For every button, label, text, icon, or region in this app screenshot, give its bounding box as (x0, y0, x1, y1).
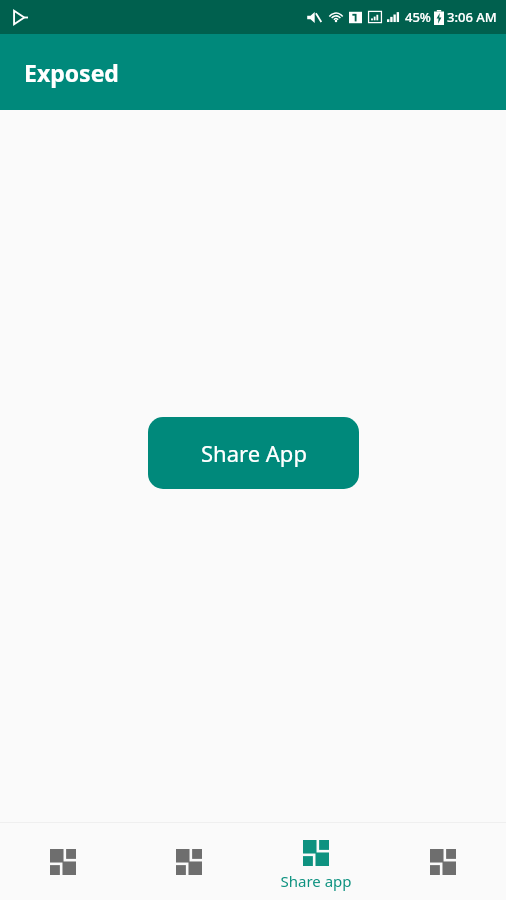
staticText: 45% (405, 8, 431, 26)
button[interactable]: Share App (148, 417, 359, 489)
staticText: Share app (280, 871, 352, 891)
button[interactable]: Share app (252, 823, 379, 900)
button[interactable]: Tab four (379, 823, 506, 900)
staticText: Exposed (24, 57, 119, 88)
staticText: 3:06 AM (447, 8, 497, 26)
button[interactable]: Tab two (126, 823, 252, 900)
button[interactable]: Tab one (0, 823, 126, 900)
staticText: Share App (201, 438, 307, 468)
